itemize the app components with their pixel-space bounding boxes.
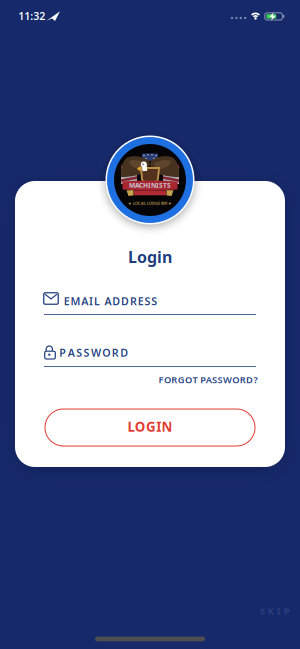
button[interactable]: LOGIN: [45, 409, 255, 446]
staticText: LOGIN: [127, 418, 173, 435]
button[interactable]: EMAIL ADDRESS: [44, 286, 256, 315]
staticText: ★ LOCAL LODGE 809 ★: [128, 201, 172, 206]
staticText: Login: [128, 246, 172, 267]
staticText: S K I P: [260, 605, 290, 617]
staticText: P A S S W O R D: [59, 345, 128, 360]
button[interactable]: S K I P: [260, 605, 290, 617]
staticText: 11:32: [18, 9, 45, 23]
staticText: FORGOT PASSWORD?: [158, 373, 257, 386]
staticText: MACHINISTS: [129, 181, 171, 190]
button[interactable]: FORGOT PASSWORD?: [158, 373, 257, 386]
staticText: EMAIL ADDRESS: [64, 294, 157, 308]
button[interactable]: P A S S W O R D: [44, 338, 256, 367]
